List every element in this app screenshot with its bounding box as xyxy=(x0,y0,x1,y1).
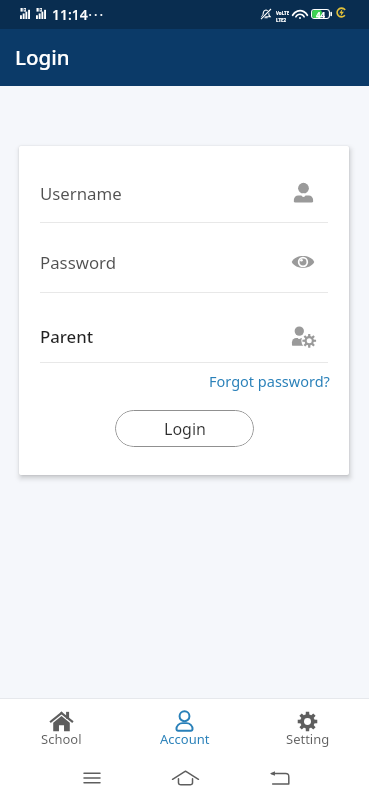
staticText: Password xyxy=(40,251,291,274)
staticText: Login xyxy=(164,418,206,440)
button[interactable]: Home xyxy=(164,756,207,799)
button[interactable]: Recent apps xyxy=(70,756,113,799)
button[interactable]: Parent xyxy=(19,293,349,362)
button[interactable]: Password xyxy=(19,223,349,292)
staticText: Parent xyxy=(40,325,291,348)
button[interactable]: Account xyxy=(123,699,246,755)
button[interactable]: Forgot password? xyxy=(209,371,330,391)
button[interactable]: Login xyxy=(115,410,254,447)
staticText: Login xyxy=(15,43,70,71)
staticText: Setting xyxy=(286,730,330,748)
staticText: VoLTE xyxy=(276,10,290,16)
staticText: 44 xyxy=(316,9,326,19)
button[interactable]: Back xyxy=(258,756,301,799)
staticText: 11:14 xyxy=(52,5,88,24)
staticText: Account xyxy=(160,730,210,748)
staticText: LTE2 xyxy=(276,17,287,23)
staticText: Username xyxy=(40,182,291,205)
button[interactable]: School xyxy=(0,699,123,755)
button[interactable]: Username xyxy=(19,146,349,222)
staticText: School xyxy=(41,730,82,748)
button[interactable]: Setting xyxy=(246,699,369,755)
